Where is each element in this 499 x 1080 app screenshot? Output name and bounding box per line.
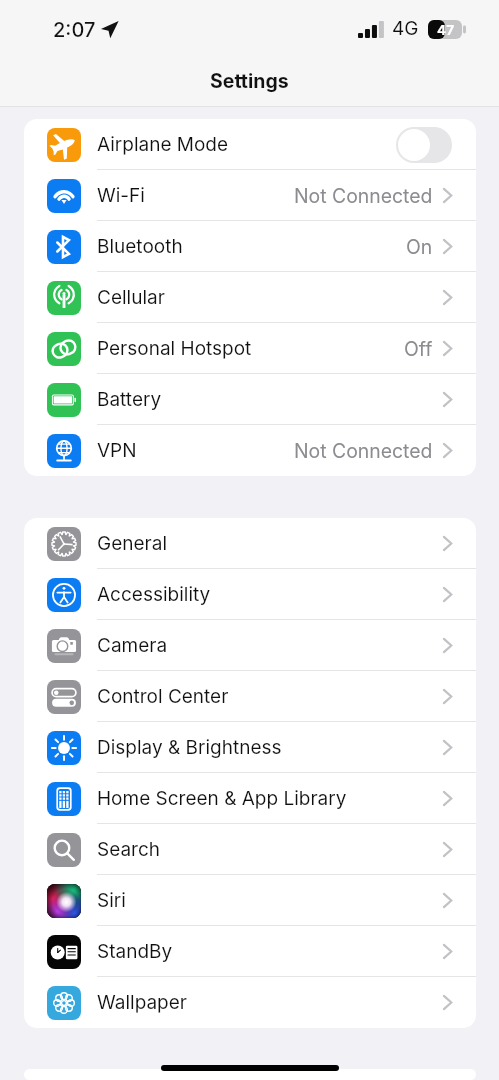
button[interactable]: Personal Hotspot bbox=[24, 323, 476, 374]
button[interactable]: Accessibility bbox=[24, 569, 476, 620]
staticText: Airplane Mode bbox=[97, 133, 229, 156]
staticText: Search bbox=[97, 838, 161, 861]
button[interactable]: Cellular bbox=[24, 272, 476, 323]
staticText: StandBy bbox=[97, 940, 173, 963]
staticText: Wi-Fi bbox=[97, 184, 145, 207]
staticText: Cellular bbox=[97, 286, 165, 309]
other: Cellular signal bbox=[358, 21, 384, 38]
button[interactable]: Wi-Fi bbox=[24, 170, 476, 221]
staticText: Battery bbox=[97, 388, 162, 411]
staticText: Bluetooth bbox=[97, 235, 183, 258]
button[interactable]: Search bbox=[24, 824, 476, 875]
button[interactable]: StandBy bbox=[24, 926, 476, 977]
staticText: Control Center bbox=[97, 685, 229, 708]
button[interactable]: Battery bbox=[24, 374, 476, 425]
staticText: Accessibility bbox=[97, 583, 211, 606]
button[interactable]: General bbox=[24, 518, 476, 569]
staticText: Wallpaper bbox=[97, 991, 187, 1014]
staticText: Siri bbox=[97, 889, 126, 912]
button[interactable]: VPN bbox=[24, 425, 476, 476]
button[interactable]: Display & Brightness bbox=[24, 722, 476, 773]
staticText: Not Connected bbox=[294, 184, 433, 207]
staticText: 4G bbox=[392, 17, 419, 40]
button[interactable]: Siri bbox=[24, 875, 476, 926]
staticText: On bbox=[406, 235, 433, 258]
button[interactable]: Camera bbox=[24, 620, 476, 671]
staticText: Personal Hotspot bbox=[97, 337, 252, 360]
staticText: Display & Brightness bbox=[97, 736, 282, 759]
staticText: Home Screen & App Library bbox=[97, 787, 347, 810]
button[interactable]: Home Screen & App Library bbox=[24, 773, 476, 824]
other: Location active bbox=[100, 20, 119, 39]
button[interactable]: Airplane Mode off bbox=[396, 127, 452, 163]
staticText: Not Connected bbox=[294, 439, 433, 462]
staticText: Off bbox=[404, 337, 433, 360]
staticText: 2:07 bbox=[53, 18, 96, 42]
button[interactable]: Wallpaper bbox=[24, 977, 476, 1028]
staticText: 47 bbox=[437, 22, 454, 38]
staticText: General bbox=[97, 532, 167, 555]
button[interactable]: Airplane Mode bbox=[24, 119, 476, 170]
button[interactable]: Control Center bbox=[24, 671, 476, 722]
staticText: Camera bbox=[97, 634, 168, 657]
button[interactable]: Bluetooth bbox=[24, 221, 476, 272]
staticText: Settings bbox=[210, 69, 289, 93]
staticText: VPN bbox=[97, 439, 137, 462]
